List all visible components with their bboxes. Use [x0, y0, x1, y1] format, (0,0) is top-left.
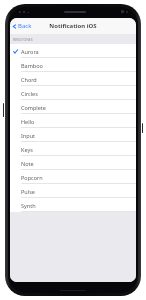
staticText: Complete	[21, 104, 46, 111]
staticText: Bamboo	[21, 62, 43, 69]
button[interactable]: Aurora	[10, 44, 136, 58]
button[interactable]: Bamboo	[10, 58, 136, 72]
staticText: Synth	[21, 202, 36, 209]
staticText: Chord	[21, 76, 37, 83]
other: Power	[142, 123, 143, 133]
button[interactable]: Hello	[10, 114, 136, 128]
staticText: Aurora	[21, 48, 39, 55]
button[interactable]: Synth	[10, 198, 136, 212]
button[interactable]: Pulse	[10, 184, 136, 198]
staticText: Hello	[21, 118, 35, 125]
staticText: Input	[21, 132, 36, 139]
other: Volume	[3, 103, 4, 117]
button[interactable]: Keys	[10, 142, 136, 156]
staticText: Popcorn	[21, 174, 43, 181]
button[interactable]: Input	[10, 128, 136, 142]
staticText: Keys	[21, 146, 33, 153]
button[interactable]: Chord	[10, 72, 136, 86]
button[interactable]: Popcorn	[10, 170, 136, 184]
staticText: Pulse	[21, 188, 35, 195]
button[interactable]: Circles	[10, 86, 136, 100]
staticText: Note	[21, 160, 34, 167]
staticText: RINGTONES	[13, 37, 33, 42]
button[interactable]: Back	[10, 18, 36, 34]
staticText: Circles	[21, 90, 38, 97]
staticText: Back	[18, 22, 32, 30]
button[interactable]: Note	[10, 156, 136, 170]
staticText: Notification iOS	[49, 22, 97, 30]
button[interactable]: Complete	[10, 100, 136, 114]
